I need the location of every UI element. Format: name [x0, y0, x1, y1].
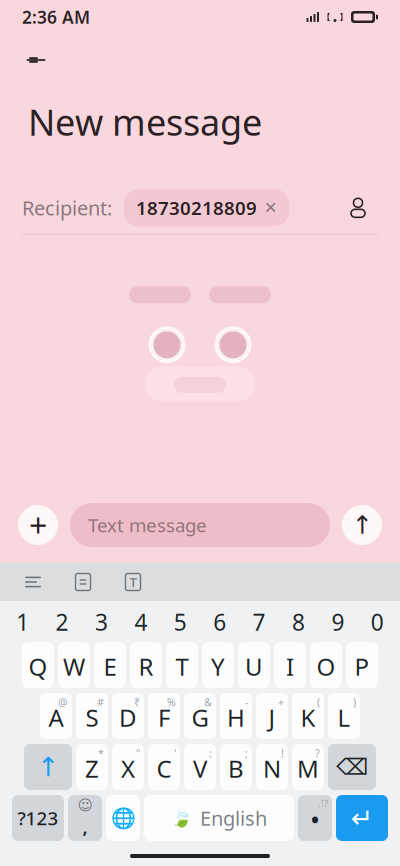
staticText: 0	[371, 607, 384, 637]
staticText: ;	[245, 746, 248, 760]
button[interactable]: 0	[358, 607, 397, 637]
button[interactable]: 4	[121, 607, 161, 637]
button[interactable]	[310, 642, 342, 688]
staticText: '	[174, 746, 176, 760]
button[interactable]: Shift	[24, 744, 72, 790]
button[interactable]: &	[184, 693, 216, 739]
button[interactable]: Text message	[70, 503, 330, 547]
button[interactable]: ?123	[12, 795, 64, 841]
button[interactable]: -	[220, 693, 252, 739]
button[interactable]	[238, 642, 270, 688]
button[interactable]: Text snippets	[68, 567, 98, 597]
button[interactable]: (	[292, 693, 324, 739]
button[interactable]: *	[76, 744, 108, 790]
button[interactable]: ₹	[112, 693, 144, 739]
button[interactable]: Choose contact	[338, 188, 378, 228]
button[interactable]	[130, 642, 162, 688]
button[interactable]: 8	[279, 607, 318, 637]
button[interactable]: Change keyboard language	[106, 795, 140, 841]
staticText: .!?	[318, 797, 328, 809]
button[interactable]: Back	[16, 40, 56, 80]
staticText: 3	[95, 607, 108, 637]
staticText: !	[281, 746, 284, 760]
staticText: 9	[331, 607, 344, 637]
staticText: )	[353, 695, 356, 709]
button[interactable]: :	[184, 744, 216, 790]
button[interactable]: @	[40, 693, 72, 739]
button[interactable]: Send	[342, 505, 382, 545]
button[interactable]: 9	[318, 607, 358, 637]
staticText: 🍃	[171, 808, 193, 828]
button[interactable]: 3	[82, 607, 121, 637]
button[interactable]: Clipboard	[18, 567, 48, 597]
staticText: D	[119, 702, 137, 733]
staticText: G	[191, 702, 208, 733]
button[interactable]: 5	[161, 607, 200, 637]
staticText: ?123	[17, 806, 58, 830]
button[interactable]: !	[256, 744, 288, 790]
staticText: H	[227, 702, 245, 733]
staticText: U	[245, 651, 263, 682]
staticText: 🌐	[110, 807, 135, 829]
staticText: A	[48, 702, 63, 733]
button[interactable]: )	[328, 693, 360, 739]
staticText: -	[245, 695, 248, 709]
staticText: :	[209, 746, 212, 760]
staticText: ,	[82, 814, 87, 839]
staticText: &	[204, 695, 212, 709]
button[interactable]: Period	[298, 795, 332, 841]
button[interactable]: +	[256, 693, 288, 739]
staticText: 18730218809	[136, 195, 257, 220]
staticText: I	[286, 651, 294, 682]
button[interactable]: 2	[42, 607, 82, 637]
button[interactable]	[274, 642, 306, 688]
staticText: V	[193, 753, 207, 784]
button[interactable]: Text formatting	[118, 567, 148, 597]
button[interactable]: ;	[220, 744, 252, 790]
button[interactable]: 18730218809	[124, 189, 289, 226]
button[interactable]: '	[148, 744, 180, 790]
staticText: N	[263, 753, 281, 784]
button[interactable]	[202, 642, 234, 688]
button[interactable]: ?	[292, 744, 324, 790]
button[interactable]: "	[112, 744, 144, 790]
staticText: ☺	[77, 797, 92, 813]
staticText: 1	[16, 607, 29, 637]
staticText: O	[316, 651, 335, 682]
button[interactable]: 6	[200, 607, 239, 637]
staticText: (	[317, 695, 320, 709]
button[interactable]: Enter	[336, 795, 388, 841]
staticText: M	[297, 753, 319, 784]
button[interactable]: 🍃	[144, 795, 294, 841]
button[interactable]: Add attachment	[18, 504, 58, 546]
staticText: %	[167, 695, 176, 709]
button[interactable]	[58, 642, 90, 688]
staticText: Z	[85, 753, 99, 784]
staticText: ₹	[134, 695, 140, 709]
staticText: @	[58, 695, 68, 709]
button[interactable]: #	[76, 693, 108, 739]
staticText: X	[121, 753, 135, 784]
staticText: 6	[213, 607, 226, 637]
button[interactable]: 7	[239, 607, 279, 637]
staticText: ⌫	[336, 754, 368, 780]
staticText: +	[278, 695, 284, 709]
staticText: Text message	[88, 513, 207, 537]
button[interactable]: Backspace	[328, 744, 376, 790]
button[interactable]: %	[148, 693, 180, 739]
staticText: ↵	[351, 803, 373, 833]
staticText: 8	[292, 607, 305, 637]
staticText: P	[354, 651, 369, 682]
button[interactable]	[94, 642, 126, 688]
button[interactable]: Emoji and comma	[68, 795, 102, 841]
staticText: W	[63, 651, 85, 682]
button[interactable]	[166, 642, 198, 688]
staticText: Q	[28, 651, 47, 682]
staticText: ✕	[264, 199, 277, 217]
button[interactable]: 1	[3, 607, 42, 637]
button[interactable]	[22, 642, 54, 688]
staticText: Y	[211, 651, 225, 682]
staticText: E	[103, 651, 116, 682]
button[interactable]	[346, 642, 378, 688]
staticText: K	[300, 702, 315, 733]
